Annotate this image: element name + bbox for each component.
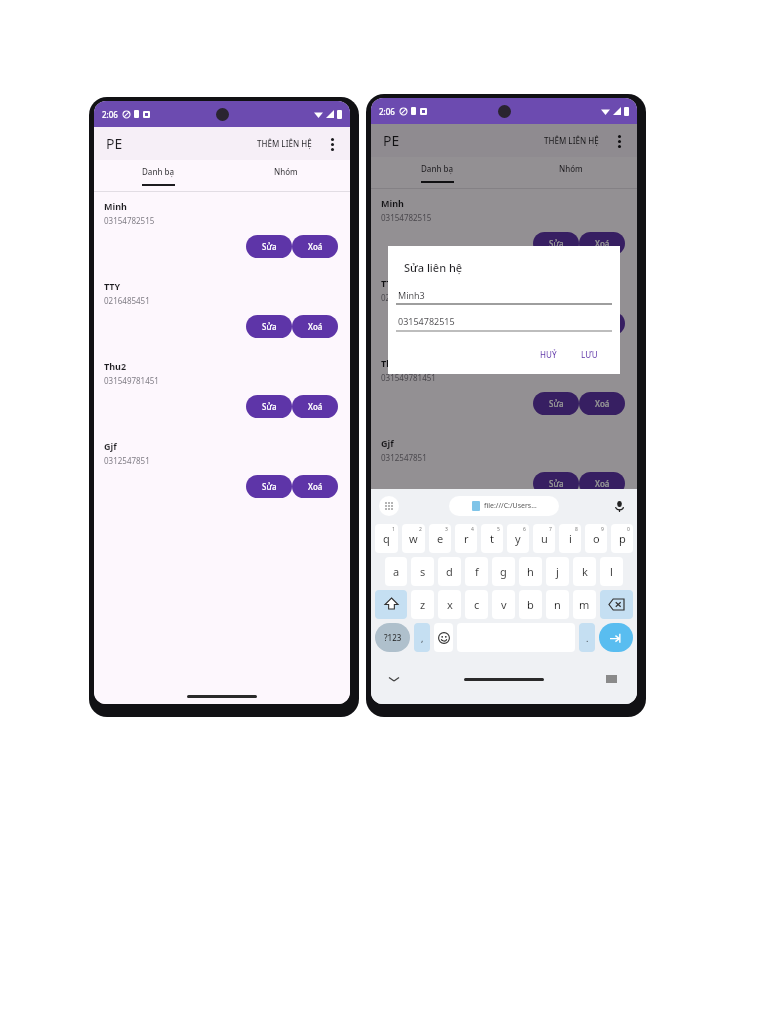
staticText: 03154782515 xyxy=(104,215,155,226)
button[interactable]: v xyxy=(492,590,515,619)
button[interactable]: Xoá xyxy=(579,312,625,335)
button[interactable]: Nhóm xyxy=(504,157,637,188)
button[interactable]: Nhóm xyxy=(222,160,350,191)
staticText: 031549781451 xyxy=(381,372,436,383)
staticText: Xoá xyxy=(308,321,323,332)
button[interactable]: p xyxy=(611,524,633,553)
button[interactable]: Danh bạ xyxy=(94,160,222,191)
staticText: Sửa xyxy=(262,241,277,252)
staticText: o xyxy=(593,531,600,546)
staticText: Xoá xyxy=(308,481,323,492)
staticText: 03154782515 xyxy=(381,212,432,223)
staticText: 7 xyxy=(549,526,552,533)
button[interactable]: Danh bạ xyxy=(371,157,504,188)
button[interactable]: j xyxy=(546,557,569,586)
button[interactable]: Emoji xyxy=(434,623,453,652)
button[interactable]: Xoá xyxy=(579,232,625,255)
button[interactable]: THÊM LIÊN HỆ xyxy=(253,132,316,155)
button[interactable]: h xyxy=(519,557,542,586)
button[interactable]: . xyxy=(579,623,595,652)
staticText: x xyxy=(447,597,453,612)
staticText: 6 xyxy=(523,526,526,533)
button[interactable]: Thu2 xyxy=(371,349,637,429)
staticText: Thu2 xyxy=(381,357,404,369)
button[interactable]: e xyxy=(429,524,451,553)
button[interactable]: TTY xyxy=(371,269,637,349)
button[interactable]: Backspace xyxy=(600,590,633,619)
button[interactable]: Sửa xyxy=(533,392,579,415)
button[interactable]: z xyxy=(411,590,434,619)
button[interactable]: r xyxy=(455,524,477,553)
button[interactable]: m xyxy=(573,590,596,619)
button[interactable]: i xyxy=(559,524,581,553)
button[interactable]: file:///C:/Users… xyxy=(449,496,559,516)
button[interactable]: x xyxy=(438,590,461,619)
staticText: Sửa xyxy=(262,321,277,332)
button[interactable]: Sửa xyxy=(246,475,292,498)
staticText: 1 xyxy=(392,526,395,533)
button[interactable]: , xyxy=(414,623,430,652)
button[interactable]: Sửa xyxy=(246,315,292,338)
button[interactable]: c xyxy=(465,590,488,619)
staticText: h xyxy=(527,564,534,579)
button[interactable]: k xyxy=(573,557,596,586)
button[interactable]: s xyxy=(411,557,434,586)
staticText: j xyxy=(556,564,559,579)
button[interactable]: Xoá xyxy=(292,395,338,418)
staticText: Sửa xyxy=(549,478,564,489)
button[interactable]: HUỶ xyxy=(532,345,565,364)
button[interactable]: u xyxy=(533,524,555,553)
button[interactable]: o xyxy=(585,524,607,553)
button[interactable]: d xyxy=(438,557,461,586)
button[interactable]: Xoá xyxy=(292,315,338,338)
button[interactable]: Xoá xyxy=(579,472,625,495)
staticText: . xyxy=(586,632,589,644)
staticText: PE xyxy=(106,134,123,153)
button[interactable]: Sửa xyxy=(246,235,292,258)
button[interactable]: Xoá xyxy=(292,235,338,258)
button[interactable]: l xyxy=(600,557,623,586)
button[interactable]: Enter xyxy=(599,623,633,652)
button[interactable]: 03154782515 xyxy=(398,315,455,327)
button[interactable]: Thu2 xyxy=(94,352,350,432)
button[interactable]: Sửa xyxy=(533,472,579,495)
button[interactable]: t xyxy=(481,524,503,553)
button[interactable]: Xoá xyxy=(292,475,338,498)
button[interactable]: Sửa xyxy=(533,312,579,335)
button[interactable]: ?123 xyxy=(375,623,410,652)
staticText: d xyxy=(446,564,453,579)
staticText: TTY xyxy=(381,277,398,289)
staticText: s xyxy=(420,564,426,579)
button[interactable]: f xyxy=(465,557,488,586)
button[interactable]: a xyxy=(385,557,407,586)
button[interactable]: Gjf xyxy=(371,429,637,509)
button[interactable]: w xyxy=(402,524,425,553)
button[interactable]: Minh xyxy=(94,192,350,272)
button[interactable]: More options xyxy=(322,134,342,154)
button[interactable]: TTY xyxy=(94,272,350,352)
staticText: 2 xyxy=(419,526,422,533)
staticText: i xyxy=(569,531,572,546)
button[interactable]: b xyxy=(519,590,542,619)
button[interactable]: g xyxy=(492,557,515,586)
staticText: Xoá xyxy=(595,238,610,249)
button[interactable]: Keyboard switcher xyxy=(379,496,399,516)
button[interactable]: Gjf xyxy=(94,432,350,512)
button[interactable]: Sửa xyxy=(533,232,579,255)
button[interactable]: q xyxy=(375,524,398,553)
button[interactable]: n xyxy=(546,590,569,619)
button[interactable]: Sửa xyxy=(246,395,292,418)
button[interactable]: Voice input xyxy=(609,496,629,516)
button[interactable]: Minh3 xyxy=(398,289,425,301)
button[interactable]: THÊM LIÊN HỆ xyxy=(540,129,603,152)
button[interactable]: Xoá xyxy=(579,392,625,415)
staticText: g xyxy=(500,564,507,579)
button[interactable]: LƯU xyxy=(573,345,606,364)
button[interactable]: Minh xyxy=(371,189,637,269)
button[interactable]: y xyxy=(507,524,529,553)
staticText: m xyxy=(579,597,590,612)
button[interactable]: Shift xyxy=(375,590,407,619)
button[interactable]: More options xyxy=(609,131,629,151)
